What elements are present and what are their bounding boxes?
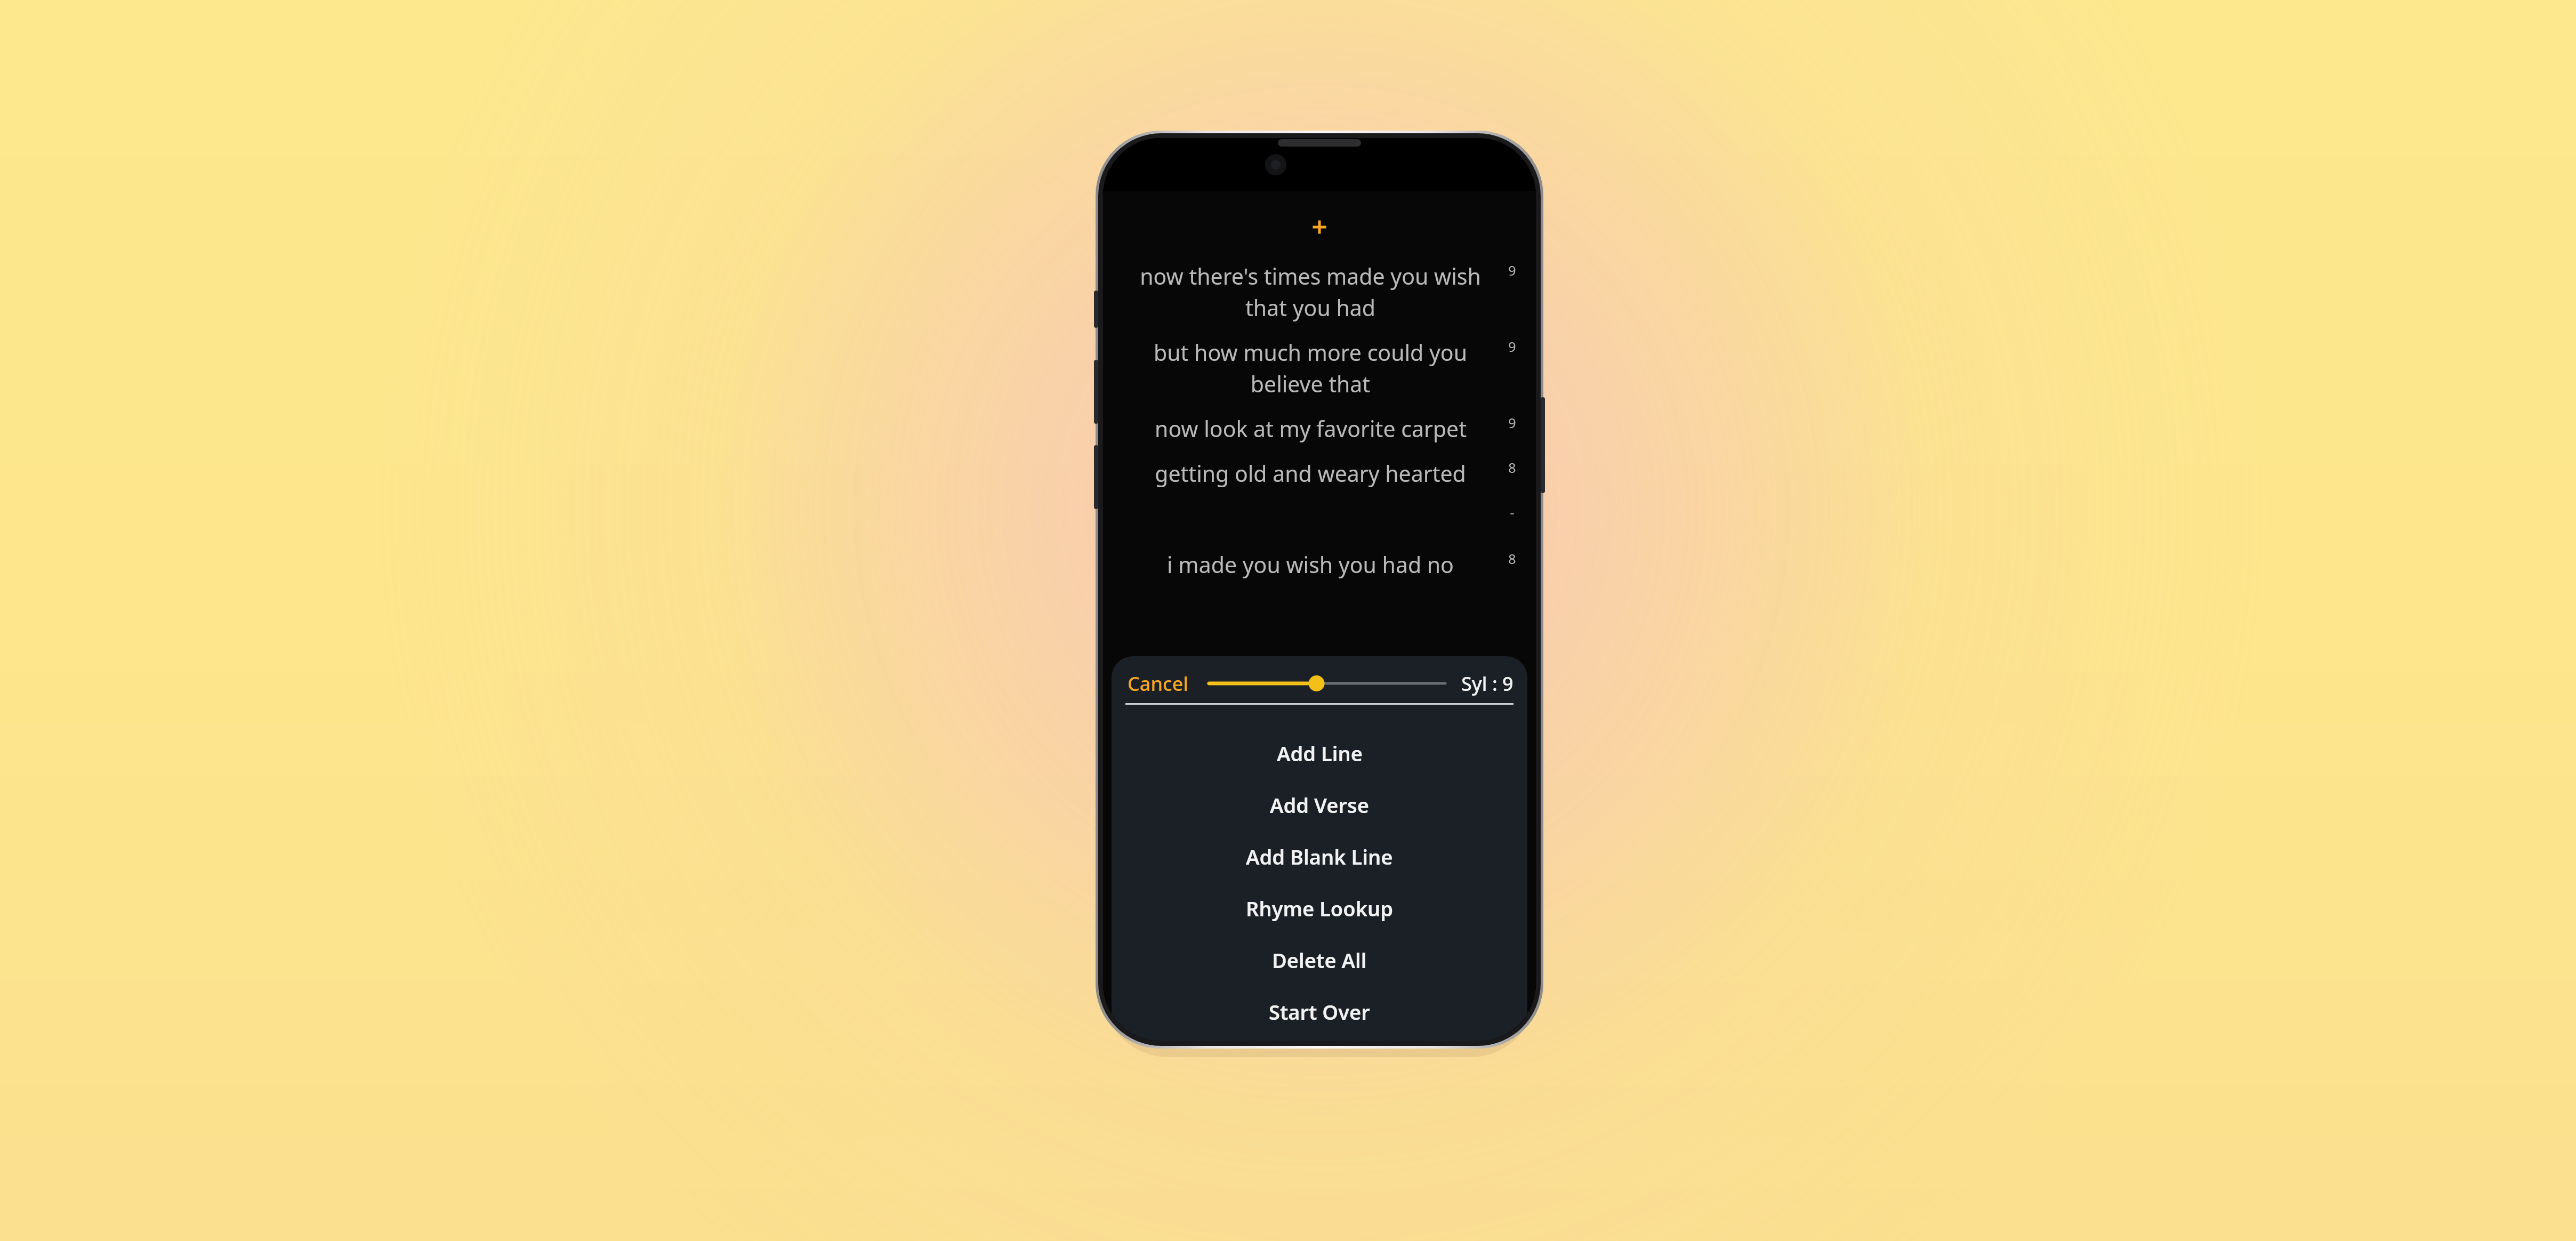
staticText: Delete All xyxy=(1272,946,1367,974)
staticText: 8 xyxy=(1508,458,1516,477)
staticText: - xyxy=(1510,503,1515,521)
staticText: 9 xyxy=(1508,337,1516,356)
button[interactable]: Delete All xyxy=(1112,934,1527,986)
button[interactable]: but how much more could you believe that xyxy=(1103,337,1536,399)
button[interactable]: now there's times made you wish that you… xyxy=(1103,261,1536,323)
button[interactable]: now look at my favorite carpet xyxy=(1103,414,1536,444)
button[interactable]: Add Blank Line xyxy=(1112,831,1527,882)
button[interactable]: Add Line xyxy=(1112,727,1527,779)
button[interactable]: Start Over xyxy=(1112,986,1527,1037)
button[interactable]: Rhyme Lookup xyxy=(1112,882,1527,934)
staticText: 8 xyxy=(1508,550,1516,568)
staticText: Syl : 9 xyxy=(1461,671,1514,697)
staticText: but how much more could you believe that xyxy=(1123,337,1498,399)
button[interactable]: getting old and weary hearted xyxy=(1103,458,1536,488)
button[interactable]: Add xyxy=(1103,213,1536,241)
staticText: Add Line xyxy=(1277,739,1363,767)
staticText: 9 xyxy=(1508,414,1516,432)
button[interactable]: Syllable slider xyxy=(1209,670,1445,697)
staticText: Add Verse xyxy=(1270,791,1369,819)
staticText: getting old and weary hearted xyxy=(1155,458,1466,488)
staticText: Start Over xyxy=(1269,998,1370,1026)
staticText: 9 xyxy=(1508,261,1516,279)
staticText: Rhyme Lookup xyxy=(1246,895,1394,922)
staticText: Cancel xyxy=(1128,671,1189,697)
staticText: now look at my favorite carpet xyxy=(1155,414,1467,444)
button[interactable]: Add Verse xyxy=(1112,779,1527,831)
staticText: i made you wish you had no xyxy=(1167,550,1454,579)
button[interactable]: Cancel xyxy=(1125,667,1191,700)
button[interactable]: i made you wish you had no xyxy=(1103,550,1536,579)
staticText: now there's times made you wish that you… xyxy=(1123,261,1498,323)
staticText: Add Blank Line xyxy=(1246,843,1393,871)
